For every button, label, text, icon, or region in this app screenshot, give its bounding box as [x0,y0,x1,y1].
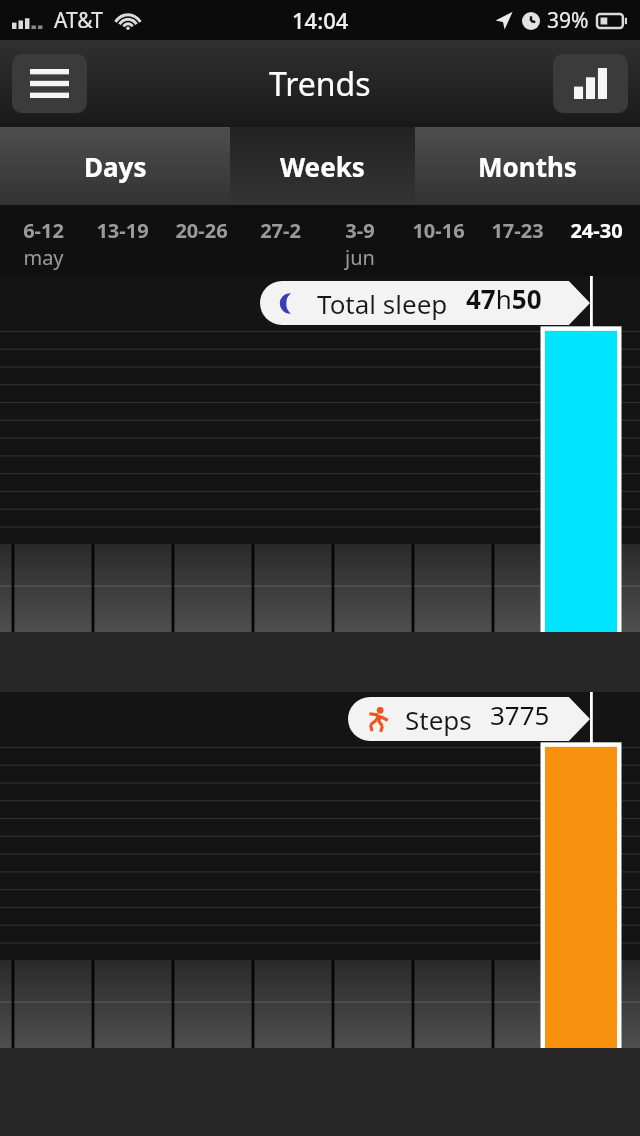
staticText: 24-30 [570,217,623,244]
button[interactable]: Menu [12,54,87,113]
staticText: 17-23 [491,217,544,244]
button[interactable]: Weeks [230,127,415,205]
staticText: 6-12 [23,217,64,244]
staticText: 39% [547,6,589,35]
button[interactable]: Steps 37757 [348,697,590,741]
button[interactable]: Days [0,127,230,205]
staticText: 13-19 [96,217,149,244]
staticText: Trends [269,62,371,106]
staticText: jun [345,244,375,271]
button[interactable]: Chart view [553,54,628,113]
staticText: may [23,244,64,271]
staticText: AT&T [54,6,103,35]
staticText: 14:04 [292,5,349,35]
staticText: Months [478,149,577,184]
staticText: Total sleep [317,286,448,321]
staticText: 20-26 [175,217,228,244]
staticText: 27-2 [260,217,301,244]
staticText: 37757 [490,697,562,741]
staticText: Days [84,149,147,184]
staticText: Steps [405,702,472,737]
staticText: 3-9 [345,217,375,244]
staticText: Weeks [280,149,365,184]
button[interactable]: Months [415,127,640,205]
button[interactable]: Total sleep 47 hours 50 minutes [260,281,590,325]
staticText: 47h50m [466,281,562,325]
staticText: 10-16 [412,217,465,244]
